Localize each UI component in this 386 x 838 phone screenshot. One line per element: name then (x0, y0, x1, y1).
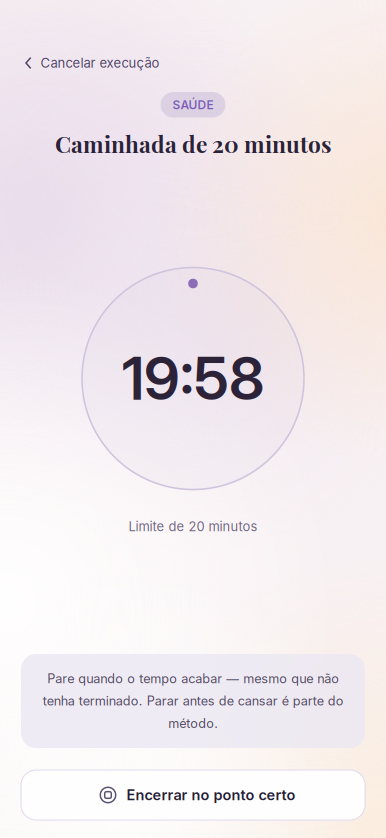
staticText: Cancelar execução (41, 55, 160, 71)
staticText: 19:58 (122, 343, 264, 414)
staticText: Limite de 20 minutos (128, 519, 257, 534)
staticText: Caminhada de 20 minutos (55, 128, 331, 159)
staticText: Pare quando o tempo acabar — mesmo que n… (42, 671, 343, 731)
staticText: SAÚDE (172, 97, 213, 112)
staticText: Encerrar no ponto certo (126, 786, 295, 804)
button[interactable]: Cancelar execução (0, 48, 184, 78)
button[interactable]: Encerrar no ponto certo (0, 770, 386, 820)
